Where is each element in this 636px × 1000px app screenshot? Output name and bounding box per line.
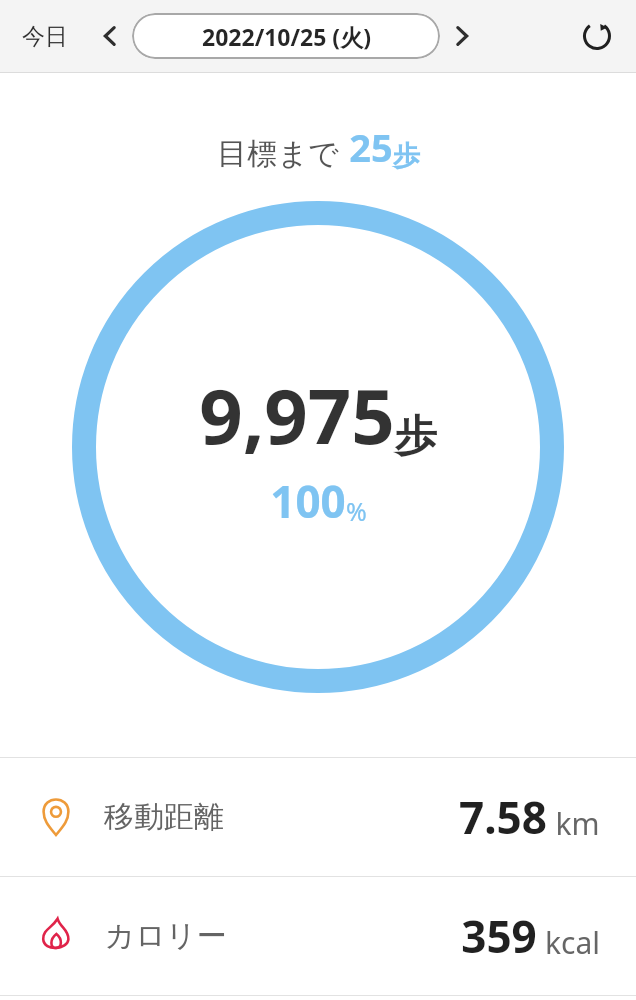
staticText: 今日 (22, 22, 68, 51)
staticText: 100 (270, 471, 346, 531)
button[interactable]: Calories (0, 877, 636, 995)
staticText: 目標まで (217, 135, 339, 173)
other: Distance (36, 797, 76, 837)
button[interactable]: Next day (440, 14, 484, 58)
button[interactable]: 2022/10/25 (火) (132, 13, 440, 59)
staticText: km (555, 803, 600, 844)
button[interactable]: Refresh (574, 13, 620, 59)
button[interactable]: Distance (0, 758, 636, 876)
staticText: 7.58 (459, 787, 547, 847)
staticText: 2022/10/25 (火) (202, 21, 371, 52)
staticText: 9,975 (199, 363, 395, 467)
staticText: 25 (349, 121, 393, 173)
staticText: 歩 (393, 139, 420, 173)
staticText: 歩 (395, 410, 437, 463)
staticText: 359 (461, 906, 537, 966)
staticText: 移動距離 (104, 798, 224, 836)
staticText: kcal (545, 922, 600, 963)
other: Calories (36, 916, 76, 956)
staticText: % (346, 494, 367, 528)
button[interactable]: 今日 (14, 16, 76, 57)
button[interactable]: Previous day (88, 14, 132, 58)
staticText: カロリー (104, 917, 227, 955)
